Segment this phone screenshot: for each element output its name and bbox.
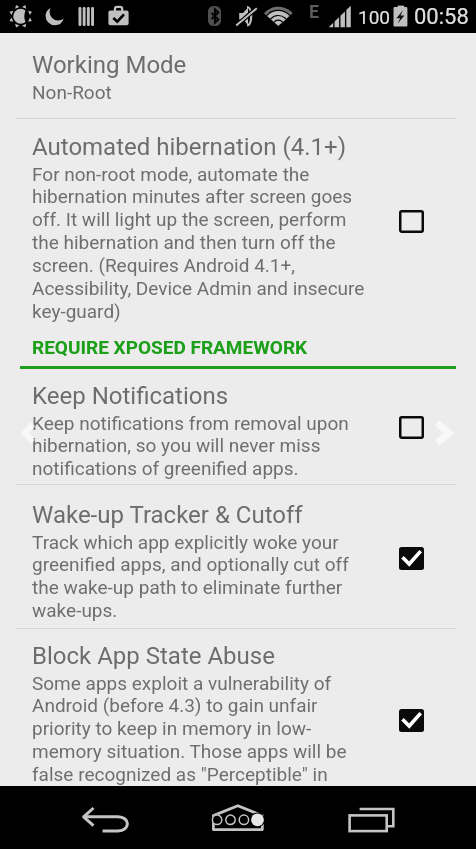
button[interactable]: Working Mode bbox=[32, 51, 187, 79]
button[interactable]: Disabled, checkbox bbox=[399, 416, 424, 439]
button[interactable]: Block App State Abuse bbox=[32, 642, 275, 670]
button[interactable]: Enabled, checkbox bbox=[399, 547, 424, 570]
staticText: 00:58 bbox=[414, 4, 469, 30]
button[interactable]: Disabled, checkbox bbox=[399, 210, 424, 233]
staticText: Track which app explicitly woke your gre… bbox=[32, 531, 370, 622]
button[interactable]: Wake-up Tracker & Cutoff bbox=[32, 501, 303, 529]
staticText: Keep notifications from removal upon hib… bbox=[32, 412, 370, 480]
staticText: For non-root mode, automate the hibernat… bbox=[32, 163, 370, 323]
staticText: 100 bbox=[358, 6, 391, 28]
button[interactable]: Enabled, checkbox bbox=[399, 709, 424, 732]
button[interactable]: Recent apps bbox=[318, 786, 476, 849]
button[interactable]: Automated hibernation (4.1+) bbox=[32, 133, 347, 161]
button[interactable]: Home bbox=[159, 786, 318, 849]
staticText: E bbox=[309, 1, 320, 22]
button[interactable]: Back bbox=[0, 786, 159, 849]
staticText: Non-Root bbox=[32, 81, 112, 103]
button[interactable]: Keep Notifications bbox=[32, 382, 229, 410]
button[interactable]: REQUIRE XPOSED FRAMEWORK bbox=[32, 336, 308, 358]
staticText: Some apps exploit a vulnerability of And… bbox=[32, 672, 370, 809]
